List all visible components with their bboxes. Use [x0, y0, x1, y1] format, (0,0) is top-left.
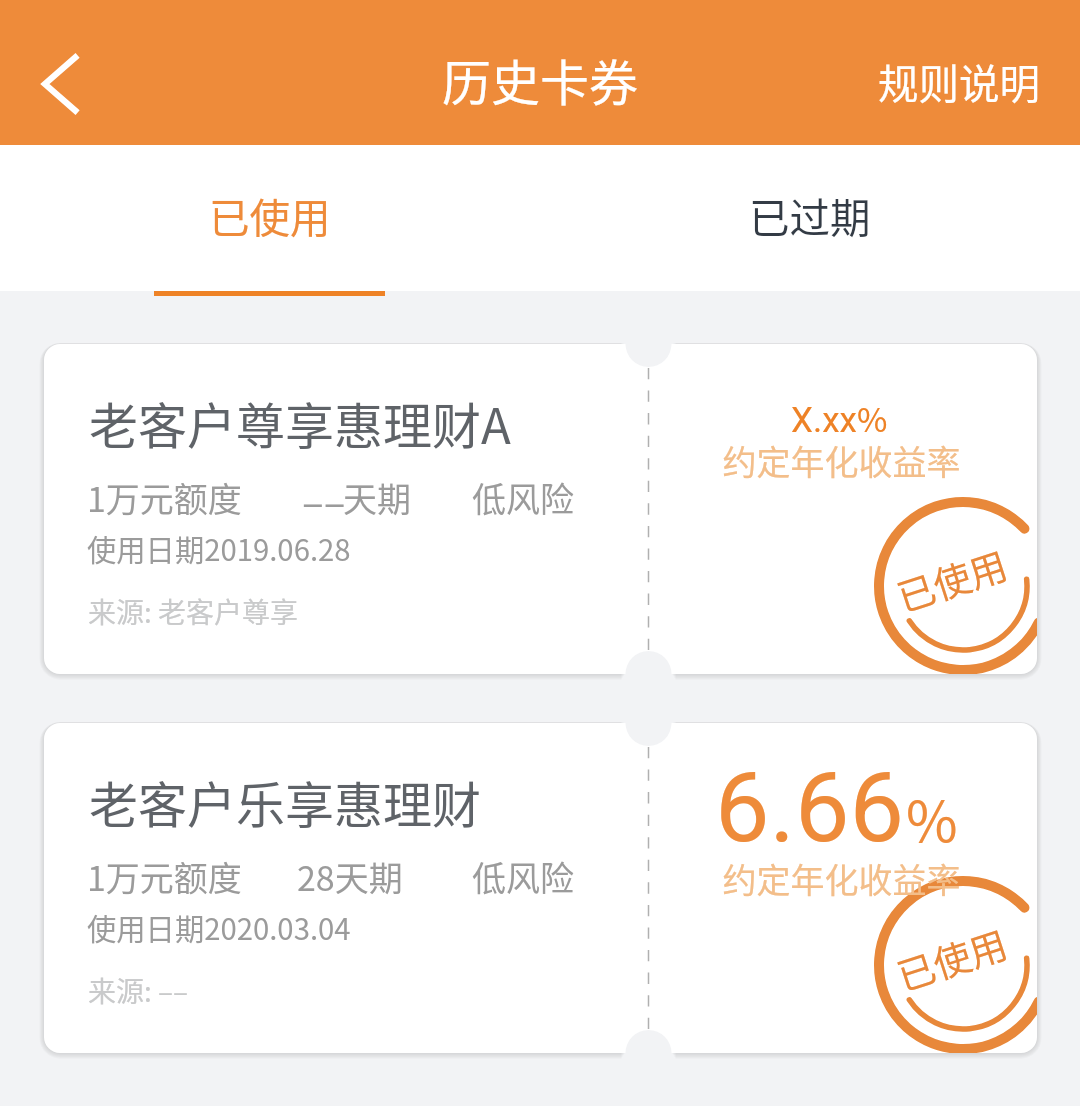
- staticText: 天期: [343, 473, 411, 522]
- button[interactable]: [0, 723, 1080, 1053]
- staticText: 1万元额度: [87, 473, 242, 522]
- staticText: 来源: ––: [88, 970, 189, 1011]
- staticText: 约定年化收益率: [647, 854, 1036, 903]
- staticText: 来源: 老客户尊享: [88, 591, 299, 632]
- staticText: 已过期: [749, 186, 871, 245]
- staticText: 使用日期2020.03.04: [87, 906, 351, 948]
- button[interactable]: 规则说明: [836, 30, 1080, 133]
- staticText: 6.66: [715, 751, 905, 865]
- staticText: 规则说明: [878, 52, 1040, 111]
- button[interactable]: Back: [14, 36, 110, 132]
- button[interactable]: 已使用: [0, 145, 540, 291]
- staticText: 低风险: [472, 852, 574, 901]
- staticText: %: [906, 777, 958, 858]
- staticText: 28天期: [297, 852, 403, 901]
- staticText: %: [857, 394, 888, 442]
- staticText: ––: [302, 470, 346, 529]
- staticText: 1万元额度: [87, 852, 242, 901]
- button[interactable]: 已过期: [540, 145, 1080, 291]
- staticText: 已使用: [209, 186, 331, 245]
- staticText: X.xx: [791, 400, 857, 441]
- staticText: 约定年化收益率: [647, 436, 1036, 485]
- staticText: 老客户乐享惠理财: [89, 766, 482, 837]
- staticText: 低风险: [472, 473, 574, 522]
- staticText: 老客户尊享惠理财A: [89, 387, 511, 458]
- button[interactable]: [0, 344, 1080, 674]
- staticText: 历史卡券: [442, 44, 639, 115]
- staticText: 使用日期2019.06.28: [87, 527, 351, 569]
